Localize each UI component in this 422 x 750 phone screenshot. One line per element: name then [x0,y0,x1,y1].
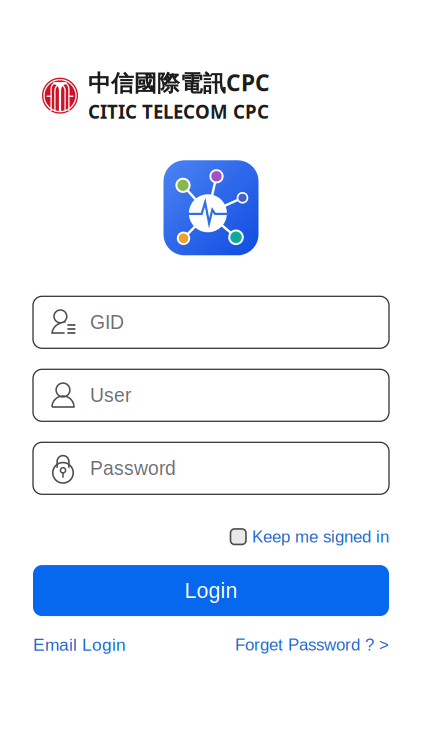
button[interactable]: Keep me signed in [230,527,389,546]
button[interactable]: Password [33,442,389,494]
staticText: GID [90,311,124,333]
staticText: CITIC TELECOM CPC [88,99,269,124]
button[interactable]: Login [33,565,389,616]
staticText: Login [184,579,237,602]
staticText: Password [90,457,176,479]
staticText: Email Login [33,635,126,654]
button[interactable]: Forget Password ? > [235,635,389,654]
staticText: 中信國際電訊CPC [88,67,270,98]
button[interactable]: Email Login [33,635,126,654]
staticText: User [90,384,131,406]
staticText: Keep me signed in [252,527,389,546]
button[interactable]: GID [33,296,389,348]
button[interactable]: User [33,369,389,421]
staticText: Forget Password ? > [235,635,389,654]
